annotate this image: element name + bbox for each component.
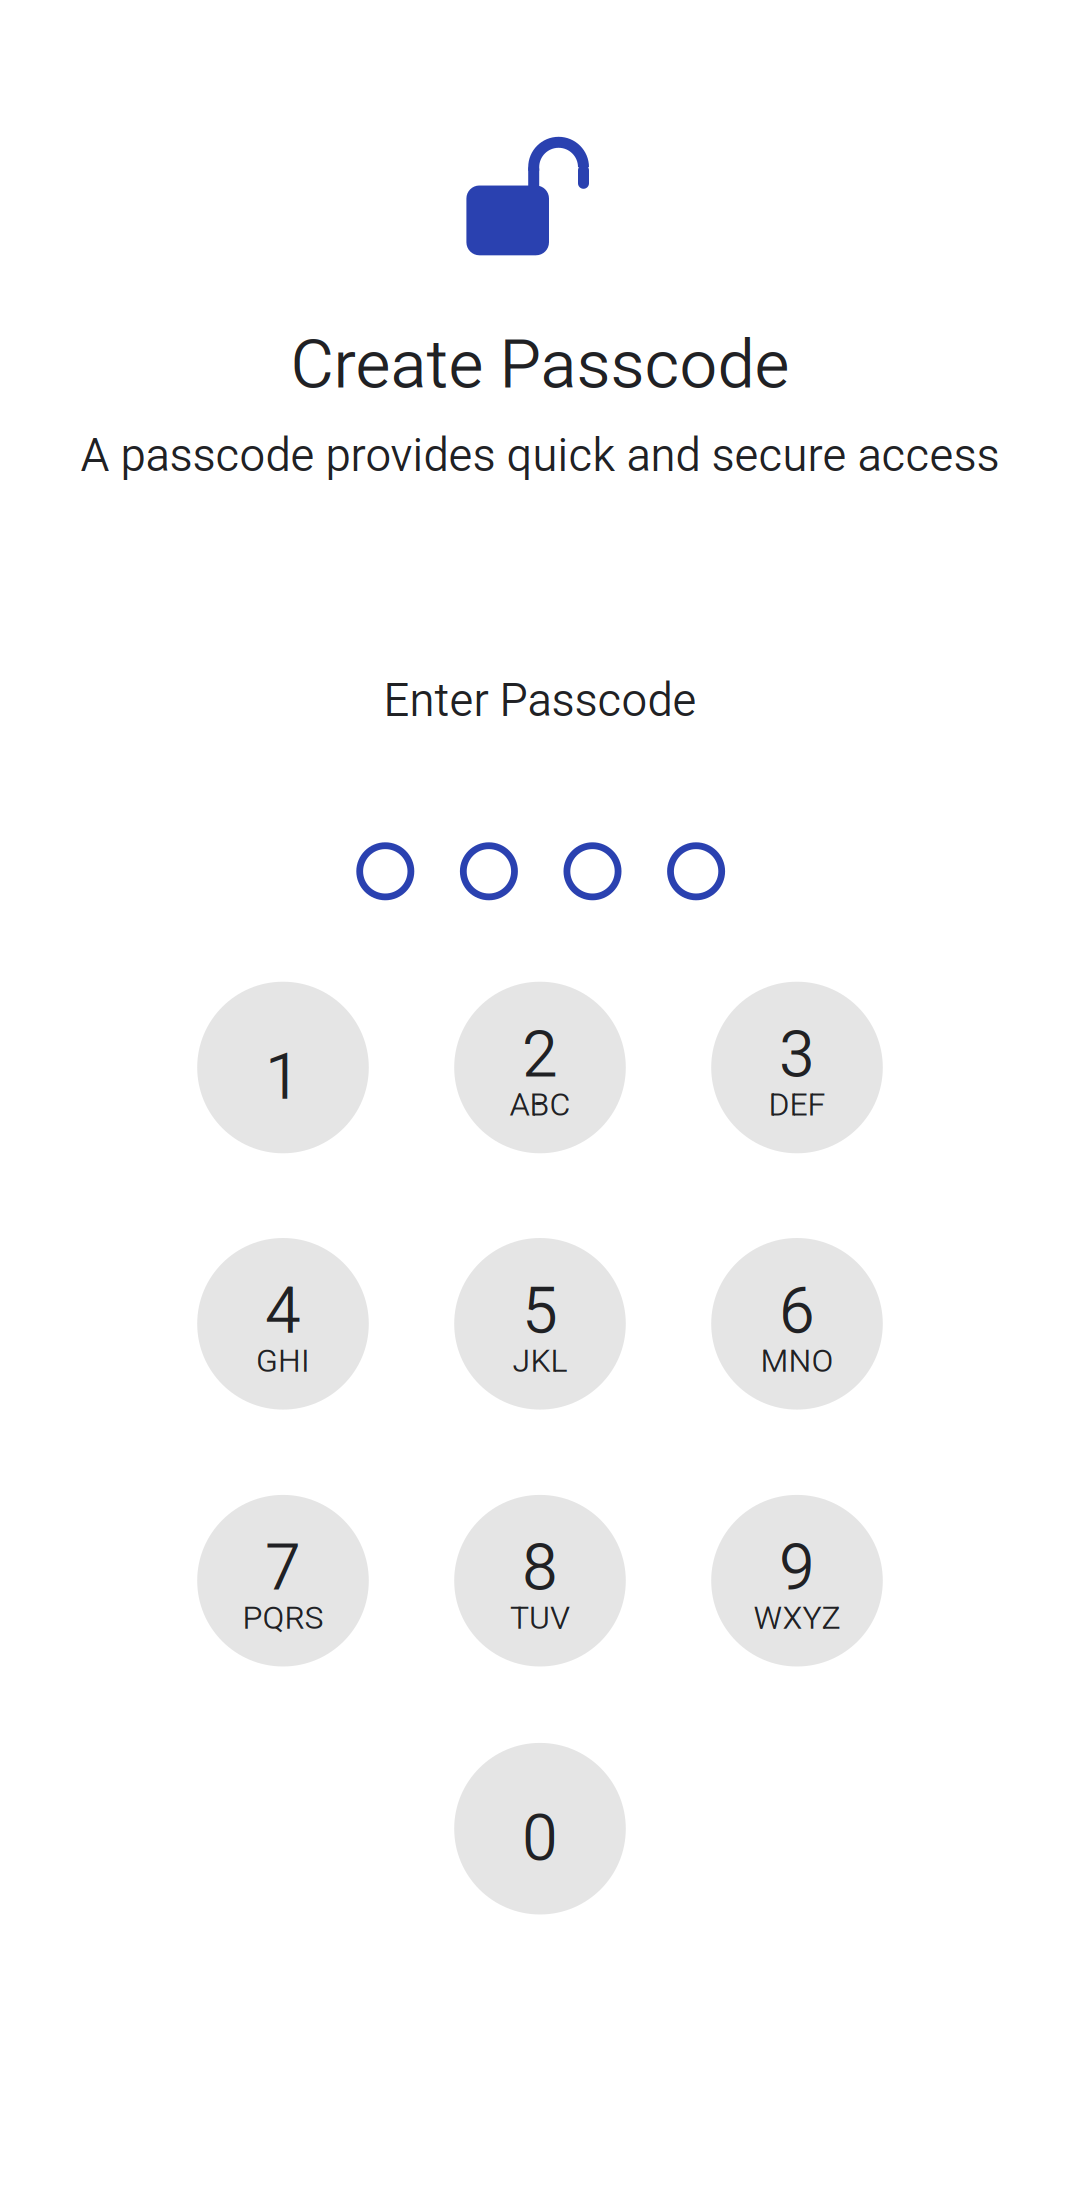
staticText: MNO [760, 1342, 833, 1380]
staticText: 3 [779, 1017, 815, 1092]
staticText: 2 [522, 1017, 558, 1092]
staticText: Create Passcode [290, 326, 789, 404]
staticText: TUV [510, 1599, 570, 1636]
button[interactable]: 8 [454, 1495, 626, 1666]
button[interactable]: 9 [711, 1495, 883, 1666]
staticText: 9 [779, 1530, 815, 1605]
staticText: DEF [768, 1086, 825, 1123]
staticText: PQRS [242, 1599, 323, 1636]
staticText: ABC [509, 1086, 570, 1123]
button[interactable]: 4 [197, 1238, 369, 1410]
staticText: GHI [256, 1342, 310, 1380]
staticText: 8 [522, 1530, 558, 1605]
button[interactable]: 1 [197, 982, 369, 1153]
button[interactable]: 7 [197, 1495, 369, 1666]
button[interactable]: 2 [454, 982, 626, 1153]
staticText: 4 [265, 1273, 301, 1348]
staticText: WXYZ [753, 1599, 840, 1636]
staticText: Enter Passcode [383, 674, 696, 727]
staticText: 1 [265, 1039, 301, 1114]
staticText: 0 [522, 1800, 558, 1875]
button[interactable]: 3 [711, 982, 883, 1153]
staticText: A passcode provides quick and secure acc… [80, 429, 999, 482]
staticText: 7 [265, 1530, 301, 1605]
staticText: 5 [522, 1273, 558, 1348]
staticText: 6 [779, 1273, 815, 1348]
button[interactable]: 6 [711, 1238, 883, 1410]
staticText: JKL [512, 1342, 567, 1380]
button[interactable]: 0 [454, 1743, 626, 1914]
button[interactable]: 5 [454, 1238, 626, 1410]
